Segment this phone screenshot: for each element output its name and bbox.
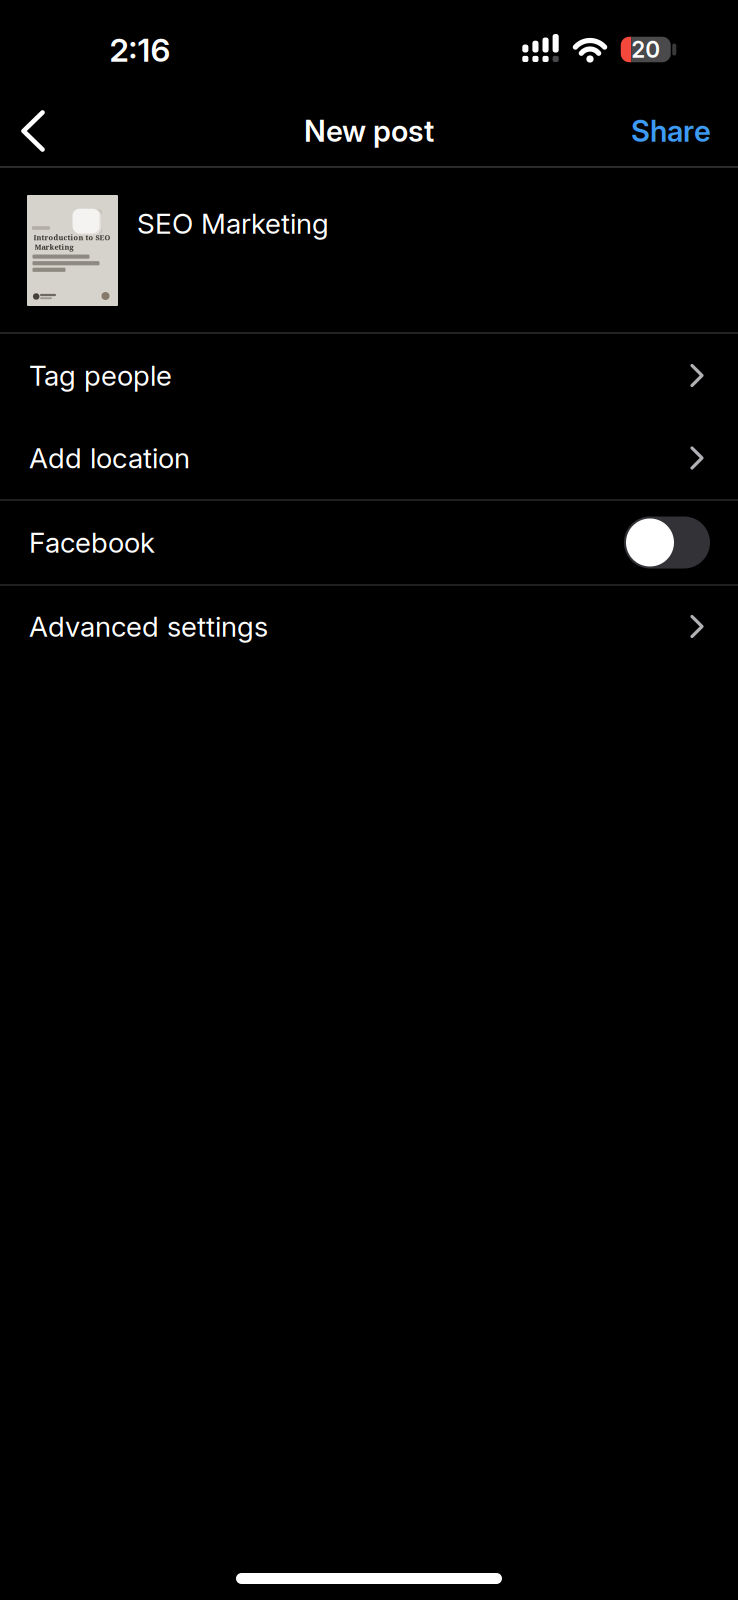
button[interactable]: Back <box>10 103 58 159</box>
staticText: Share <box>631 114 711 148</box>
button[interactable]: Advanced settings <box>0 586 738 667</box>
staticText: 20 <box>631 36 660 63</box>
button[interactable]: Add location <box>0 417 738 499</box>
staticText: Introduction to SEO <box>33 232 110 242</box>
staticText: Facebook <box>29 526 155 559</box>
staticText: New post <box>304 114 434 148</box>
staticText: 2:16 <box>109 31 170 69</box>
staticText: Marketing <box>34 242 73 252</box>
staticText: Add location <box>29 441 190 474</box>
staticText: Tag people <box>29 359 172 392</box>
staticText: SEO Marketing <box>137 207 329 240</box>
button[interactable]: Introduction to SEO <box>0 168 738 332</box>
button[interactable]: Share <box>631 114 711 148</box>
staticText: Advanced settings <box>29 610 268 643</box>
button[interactable]: Tag people <box>0 334 738 417</box>
button[interactable]: Share to Facebook <box>624 516 710 568</box>
